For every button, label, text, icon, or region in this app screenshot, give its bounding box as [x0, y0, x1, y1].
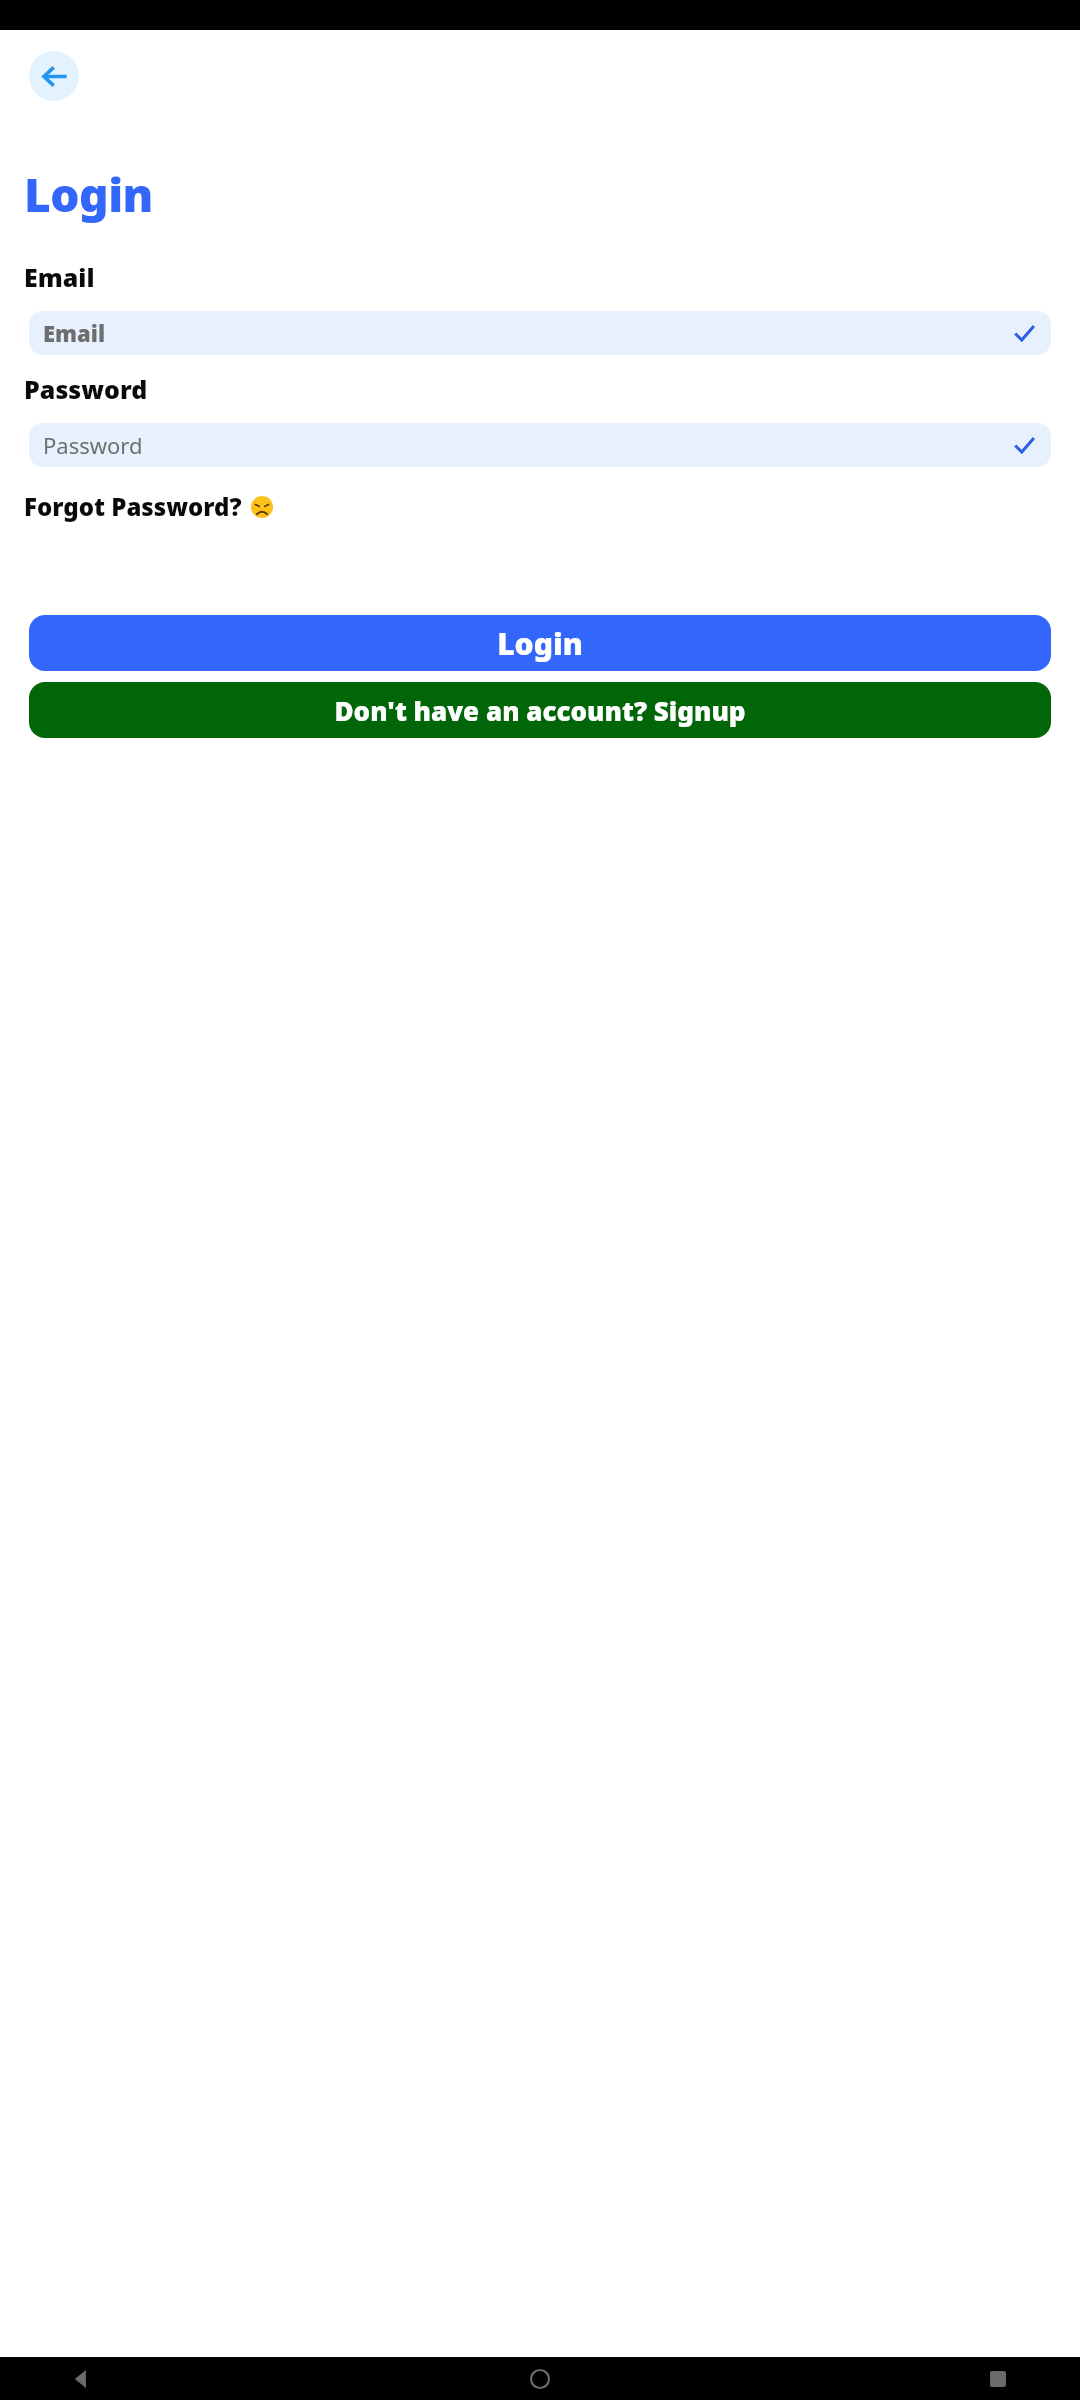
staticText: Login	[497, 623, 583, 664]
button[interactable]: Login	[29, 615, 1051, 671]
staticText: Forgot Password?	[24, 490, 242, 523]
staticText: Don't have an account? Signup	[334, 693, 746, 728]
staticText: Login	[24, 163, 153, 226]
button[interactable]: Don't have an account? Signup	[29, 682, 1051, 738]
button[interactable]: Password	[29, 423, 1051, 467]
button[interactable]: Email	[29, 311, 1051, 355]
button[interactable]: Back	[60, 2357, 104, 2400]
staticText: Email	[24, 260, 95, 294]
staticText: Email	[43, 318, 106, 348]
staticText: Password	[43, 430, 143, 460]
button[interactable]: Recent apps	[976, 2357, 1020, 2400]
button[interactable]: Back	[29, 51, 79, 101]
button[interactable]: Home	[518, 2357, 562, 2400]
staticText: Password	[24, 372, 148, 406]
button[interactable]: Forgot Password?	[24, 490, 273, 523]
